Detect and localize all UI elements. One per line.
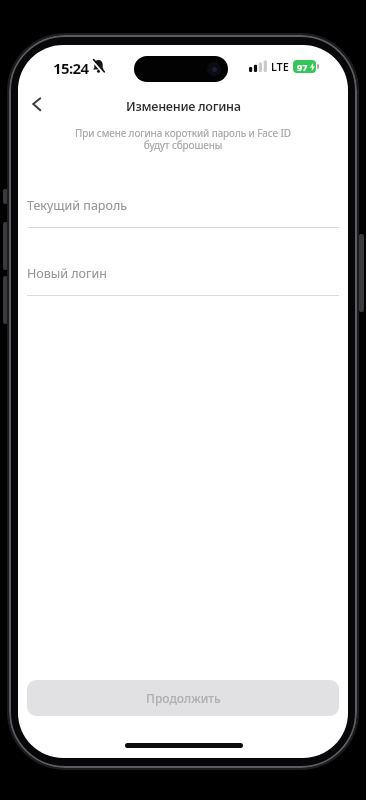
staticText: Текущий пароль	[27, 197, 128, 214]
staticText: Продолжить	[146, 690, 221, 706]
staticText: При смене логина короткий пароль и Face …	[75, 126, 291, 152]
button[interactable]: Продолжить	[27, 680, 339, 716]
staticText: Новый логин	[27, 265, 107, 282]
staticText: 97	[297, 61, 308, 73]
button[interactable]: Текущий пароль	[27, 192, 339, 228]
staticText: 15:24	[53, 58, 89, 78]
staticText: Изменение логина	[126, 98, 241, 115]
button[interactable]: Новый логин	[27, 260, 339, 296]
button[interactable]	[26, 93, 52, 119]
staticText: LTE	[271, 59, 289, 74]
